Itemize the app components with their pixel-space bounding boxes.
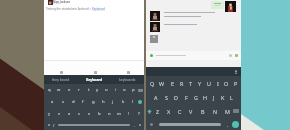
staticText: y: [96, 87, 99, 93]
button[interactable]: Shift: [147, 109, 152, 114]
staticText: J: [213, 94, 215, 101]
button[interactable]: d: [68, 96, 78, 108]
button[interactable]: r: [74, 84, 84, 96]
button[interactable]: Stickers: [94, 71, 97, 74]
button[interactable]: g: [88, 96, 98, 108]
button[interactable]: Keyboard: [78, 75, 111, 84]
staticText: .: [227, 122, 229, 128]
staticText: q: [48, 87, 51, 93]
button[interactable]: m: [114, 108, 124, 120]
staticText: k: [122, 99, 125, 105]
staticText: b: [98, 111, 101, 117]
button[interactable]: N: [209, 104, 221, 118]
staticText: g: [92, 99, 95, 105]
button[interactable]: k: [118, 96, 128, 108]
button[interactable]: Q: [147, 76, 157, 90]
button[interactable]: S: [161, 90, 171, 104]
staticText: 21 hrs: [53, 2, 60, 5]
button[interactable]: U: [204, 76, 213, 90]
button[interactable]: P: [231, 76, 240, 90]
staticText: c: [78, 111, 81, 117]
staticText: E: [171, 80, 174, 87]
button[interactable]: M: [221, 104, 233, 118]
button[interactable]: Enter: [138, 100, 142, 104]
button[interactable]: R: [177, 76, 186, 90]
staticText: i: [115, 87, 117, 93]
button[interactable]: w: [54, 84, 64, 96]
staticText: R: [180, 80, 184, 87]
staticText: t: [88, 87, 90, 93]
button[interactable]: Backspace: [233, 109, 239, 113]
button[interactable]: !: [124, 108, 134, 120]
staticText: S: [165, 94, 168, 101]
staticText: d: [72, 99, 75, 105]
button[interactable]: they board: [44, 75, 78, 84]
button[interactable]: Emoji: [229, 54, 232, 57]
button[interactable]: Search: [127, 71, 130, 74]
button[interactable]: K: [218, 90, 227, 104]
button[interactable]: o: [120, 84, 129, 96]
staticText: V: [189, 108, 193, 115]
button[interactable]: p: [129, 84, 138, 96]
button[interactable]: f: [78, 96, 88, 108]
button[interactable]: h: [98, 96, 108, 108]
button[interactable]: a: [47, 96, 58, 108]
button[interactable]: e: [64, 84, 74, 96]
button[interactable]: F: [181, 90, 191, 104]
button[interactable]: v: [84, 108, 94, 120]
button[interactable]: Insert image: [60, 71, 63, 74]
button[interactable]: x: [64, 108, 74, 120]
staticText: /: [53, 123, 55, 128]
button[interactable]: ?: [134, 108, 144, 120]
button[interactable]: Voice input: [234, 70, 238, 74]
button[interactable]: D: [171, 90, 181, 104]
button[interactable]: W: [157, 76, 167, 90]
staticText: G: [194, 94, 198, 101]
button[interactable]: B: [197, 104, 209, 118]
button[interactable]: Send: [232, 121, 239, 128]
button[interactable]: b: [94, 108, 104, 120]
button[interactable]: keyboards: [111, 75, 144, 84]
button[interactable]: H: [200, 90, 209, 104]
button[interactable]: E: [167, 76, 177, 90]
button[interactable]: Backspace: [138, 89, 143, 92]
button[interactable]: u: [102, 84, 111, 96]
staticText: K: [221, 94, 225, 101]
button[interactable]: z: [54, 108, 64, 120]
button[interactable]: c: [74, 108, 84, 120]
staticText: h: [102, 99, 105, 105]
button[interactable]: t: [84, 84, 93, 96]
button[interactable]: J: [209, 90, 218, 104]
staticText: W: [159, 80, 165, 87]
button[interactable]: s: [58, 96, 68, 108]
button[interactable]: X: [163, 104, 174, 118]
button[interactable]: O: [222, 76, 231, 90]
staticText: L: [230, 94, 233, 101]
button[interactable]: Y: [195, 76, 204, 90]
button[interactable]: q: [44, 84, 54, 96]
button[interactable]: A: [151, 90, 161, 104]
button[interactable]: C: [174, 104, 185, 118]
button[interactable]: G: [191, 90, 200, 104]
button[interactable]: j: [108, 96, 118, 108]
button[interactable]: i: [111, 84, 120, 96]
staticText: ⇧: [47, 112, 51, 117]
button[interactable]: V: [185, 104, 197, 118]
button[interactable]: [211, 1, 224, 9]
button[interactable]: l: [128, 96, 138, 108]
button[interactable]: L: [227, 90, 236, 104]
button[interactable]: n: [104, 108, 114, 120]
button[interactable]: Space: [159, 123, 221, 126]
button[interactable]: Attach: [235, 54, 238, 57]
button[interactable]: ⇧: [44, 108, 54, 120]
button[interactable]: Space: [58, 124, 130, 126]
staticText: Keyboard: [86, 77, 103, 82]
button[interactable]: Z: [152, 104, 163, 118]
button[interactable]: y: [93, 84, 102, 96]
staticText: n: [108, 111, 111, 117]
staticText: z: [58, 111, 60, 117]
button[interactable]: I: [213, 76, 222, 90]
button[interactable]: T: [186, 76, 195, 90]
staticText: Marc Jackson: [53, 0, 71, 4]
staticText: H: [203, 94, 207, 101]
